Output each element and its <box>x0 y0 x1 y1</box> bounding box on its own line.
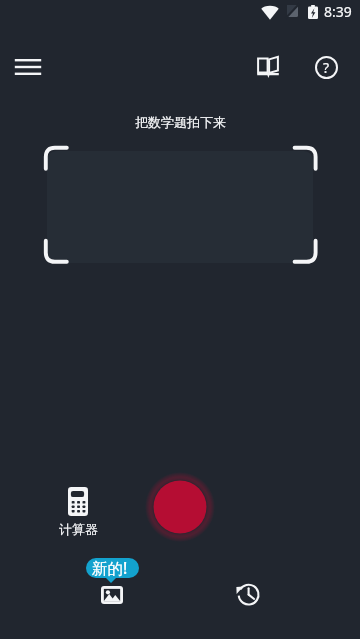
button[interactable]: Shutter <box>144 471 216 543</box>
staticText: 8:39 <box>324 2 352 21</box>
staticText: 计算器 <box>59 521 98 537</box>
button[interactable]: Menu <box>10 49 46 85</box>
button[interactable]: Gallery <box>94 577 130 613</box>
button[interactable]: Help <box>308 49 344 85</box>
button[interactable]: History <box>230 577 266 613</box>
staticText: 新的! <box>92 558 128 577</box>
button[interactable]: 计算器 <box>48 482 108 537</box>
button[interactable]: Textbook <box>250 49 286 85</box>
staticText: ? <box>323 58 330 77</box>
staticText: 把数学题拍下来 <box>135 114 226 130</box>
